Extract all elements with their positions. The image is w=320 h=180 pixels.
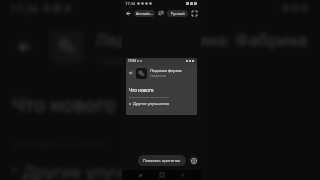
button[interactable]: Expand bbox=[190, 9, 199, 18]
staticText: Что нового bbox=[129, 87, 154, 93]
staticText: Другие улучшения bbox=[133, 101, 170, 106]
button[interactable]: Английс... bbox=[134, 10, 155, 17]
staticText: Ледяная ферма: Фабрика Рода bbox=[150, 68, 195, 73]
button[interactable]: Показать оригинал bbox=[138, 155, 186, 166]
button[interactable]: Translate settings bbox=[189, 156, 198, 165]
button[interactable]: Back bbox=[128, 70, 134, 76]
button[interactable]: Back bbox=[12, 34, 38, 60]
staticText: Русский bbox=[171, 11, 185, 16]
staticText: Ледяная ферма: Фабрика Рода bbox=[96, 28, 308, 51]
button[interactable]: Close translation bbox=[124, 9, 133, 18]
button[interactable]: Home bbox=[158, 171, 166, 179]
staticText: Свидетели bbox=[150, 74, 166, 78]
button[interactable]: Русский bbox=[167, 10, 188, 17]
button[interactable]: Swap languages bbox=[157, 9, 165, 17]
staticText: Другие улучшения bbox=[23, 160, 178, 180]
button[interactable]: Back bbox=[179, 171, 187, 179]
staticText: Свидетели bbox=[96, 53, 148, 67]
staticText: Показать оригинал bbox=[143, 158, 181, 163]
button[interactable]: Back bbox=[128, 65, 195, 81]
staticText: Английс... bbox=[136, 11, 154, 16]
button[interactable]: Другие улучшения bbox=[129, 101, 194, 106]
button[interactable]: Recent apps bbox=[136, 171, 144, 179]
staticText: 17:34 bbox=[128, 59, 136, 63]
staticText: 17:34 bbox=[10, 1, 39, 16]
staticText: Что нового bbox=[12, 92, 116, 118]
staticText: 17:34 bbox=[125, 1, 136, 6]
